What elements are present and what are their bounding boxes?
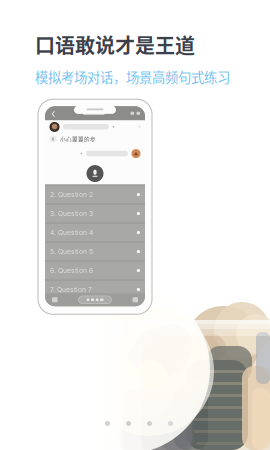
staticText: 5. Question 5 — [50, 247, 93, 256]
button[interactable]: 2. Question 2 — [45, 186, 145, 203]
button[interactable]: Keyboard — [50, 294, 59, 305]
button[interactable]: 3. Question 3 — [45, 205, 145, 222]
button[interactable]: 4. Question 4 — [45, 224, 145, 241]
button[interactable]: Record — [86, 165, 103, 182]
staticText: 3. Question 3 — [50, 209, 93, 218]
button[interactable]: 7. Question 7 — [45, 281, 145, 298]
button[interactable]: 5. Question 5 — [45, 243, 145, 260]
button[interactable]: Record — [79, 296, 111, 304]
staticText: 小心翼翼的步 — [60, 135, 96, 143]
staticText: 4. Question 4 — [50, 228, 93, 237]
staticText: 2. Question 2 — [50, 190, 93, 199]
button[interactable]: More — [130, 294, 140, 305]
staticText: 7. Question 7 — [50, 285, 92, 294]
button[interactable]: 6. Question 6 — [45, 262, 145, 279]
staticText: 6. Question 6 — [50, 266, 93, 275]
staticText: 口语敢说才是王道 — [35, 30, 195, 59]
staticText: ‹ — [51, 106, 56, 120]
button[interactable]: Back — [50, 108, 57, 118]
staticText: 模拟考场对话，场景高频句式练习 — [35, 67, 230, 86]
